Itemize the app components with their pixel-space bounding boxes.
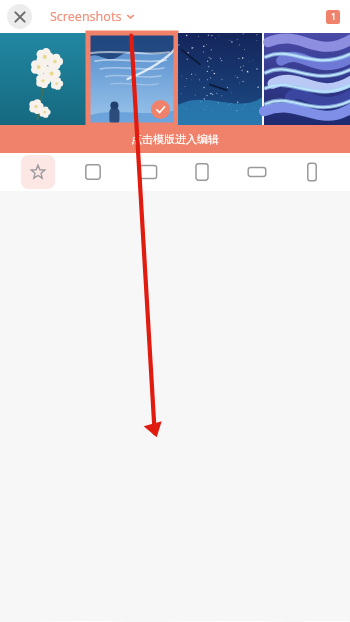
button[interactable]: Ratio 16 to 9 — [240, 155, 274, 189]
staticText: 1 — [331, 11, 336, 23]
staticText: 点击模版进入编辑 — [131, 132, 219, 146]
button[interactable]: Photo 1 — [0, 33, 86, 125]
button[interactable]: Ratio 9 to 16 — [295, 155, 329, 189]
button[interactable]: Photo 2 selected — [88, 33, 176, 125]
button[interactable]: Ratio 3 to 4 — [185, 155, 219, 189]
button[interactable]: 1 — [326, 10, 340, 24]
button[interactable]: 点击模版进入编辑 — [0, 125, 350, 153]
staticText: Screenshots — [50, 8, 122, 25]
button[interactable]: Photo 4 — [264, 33, 350, 125]
button[interactable]: Screenshots — [50, 8, 135, 25]
button[interactable]: Ratio 4 to 3 — [131, 155, 165, 189]
button[interactable]: Favorites — [21, 155, 55, 189]
button[interactable]: Photo 3 — [178, 33, 262, 125]
button[interactable]: Ratio 1 to 1 — [76, 155, 110, 189]
button[interactable]: Close — [7, 4, 32, 29]
